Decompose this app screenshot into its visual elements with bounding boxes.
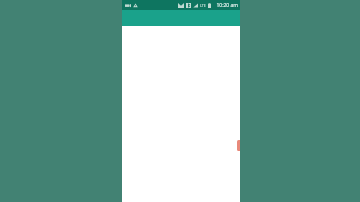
staticText: 10:20 am [216,2,238,9]
other: Scroll indicator [237,140,240,151]
staticText: LTE [200,3,206,8]
